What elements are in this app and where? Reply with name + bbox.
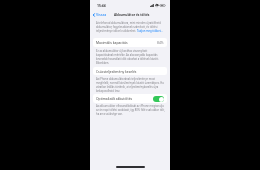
- staticText: Akkumulátor és töltés: [114, 13, 150, 17]
- staticText: Optimalizált akkutöltés: [96, 96, 133, 101]
- button[interactable]: Vissza: [90, 11, 109, 18]
- staticText: Vissza: [96, 12, 107, 17]
- staticText: Az iPhone akkumulátorának teljesítménye …: [96, 77, 165, 93]
- staticText: 84%: [157, 40, 164, 45]
- staticText: Csúcsteljesítmény kezelés: [96, 69, 137, 74]
- staticText: Az akkumulátor elhasználódását az iPhone…: [96, 104, 165, 116]
- staticText: A telefonod akkumulátora, mint minden új…: [96, 21, 165, 33]
- staticText: 15:44: [97, 3, 106, 8]
- button[interactable]: Optimalizált akkutöltés kapcsoló: [153, 96, 164, 102]
- staticText: Maximális kapacitás: [96, 40, 128, 45]
- button[interactable]: Csúcsteljesítmény kezelés: [93, 67, 167, 75]
- staticText: Ez az akkumulátor új korához viszonyítot…: [96, 49, 165, 65]
- button[interactable]: Maximális kapacitás: [93, 38, 167, 47]
- button[interactable]: Optimalizált akkutöltés: [93, 94, 167, 103]
